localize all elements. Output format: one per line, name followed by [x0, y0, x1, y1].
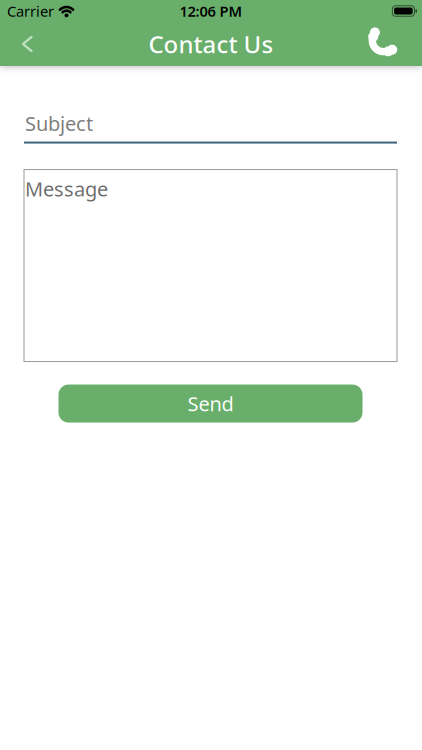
staticText: Subject: [25, 110, 93, 137]
button[interactable]: Message: [24, 170, 397, 362]
staticText: Carrier: [7, 1, 54, 21]
button[interactable]: Back: [0, 22, 33, 66]
staticText: Send: [187, 390, 233, 417]
button[interactable]: Subject: [24, 110, 397, 144]
staticText: Message: [25, 176, 108, 202]
button[interactable]: Send: [58, 385, 362, 423]
staticText: 12:06 PM: [179, 1, 242, 21]
staticText: Contact Us: [148, 28, 273, 60]
button[interactable]: Call: [368, 27, 422, 60]
